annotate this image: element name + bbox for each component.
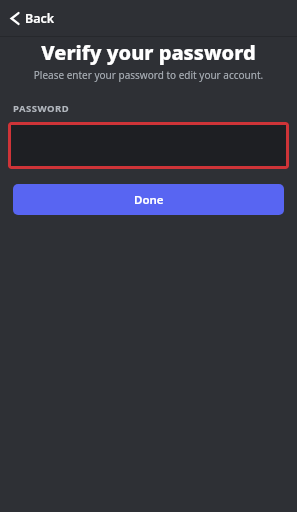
staticText: Verify your password xyxy=(0,39,297,66)
staticText: Done xyxy=(134,192,164,208)
button[interactable]: Done xyxy=(13,184,284,215)
staticText: Please enter your password to edit your … xyxy=(0,68,297,82)
staticText: PASSWORD xyxy=(13,102,70,115)
button[interactable]: Back xyxy=(0,6,63,31)
staticText: Back xyxy=(25,10,55,27)
button[interactable] xyxy=(8,122,289,169)
